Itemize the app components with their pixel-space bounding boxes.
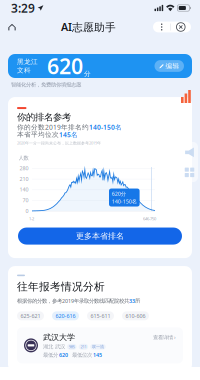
staticText: 625-621 xyxy=(20,312,40,319)
staticText: 文科 xyxy=(17,66,31,74)
staticText: 646-750 xyxy=(143,216,156,221)
button[interactable]: More options xyxy=(153,22,170,32)
button[interactable]: 编辑 xyxy=(154,60,184,72)
staticText: 610-606 xyxy=(125,312,145,319)
button[interactable]: Home xyxy=(0,19,24,34)
staticText: 140 xyxy=(19,186,28,193)
button[interactable]: 615-611 xyxy=(87,311,114,320)
staticText: 0 xyxy=(25,207,28,214)
staticText: 智能化分析，免费助你填报志愿 xyxy=(11,81,81,88)
staticText: 湖北 武汉 xyxy=(43,343,65,350)
button[interactable]: 武汉大学 xyxy=(17,327,183,363)
staticText: 280 xyxy=(19,165,28,172)
staticText: 武汉大学 xyxy=(43,332,75,342)
staticText: 140-150名 xyxy=(112,198,137,205)
staticText: 1-2 xyxy=(29,216,34,221)
button[interactable]: Close xyxy=(171,22,191,32)
staticText: 615-611 xyxy=(90,312,110,319)
staticText: 更多本省排名 xyxy=(76,231,124,241)
staticText: 33 xyxy=(129,297,135,304)
staticText: 编辑 xyxy=(165,62,179,70)
staticText: 70 xyxy=(22,197,28,204)
button[interactable]: 610-606 xyxy=(122,311,149,320)
staticText: 分 xyxy=(84,70,91,78)
button[interactable]: 620-616 xyxy=(52,311,79,320)
button[interactable]: Announcements xyxy=(181,142,198,163)
staticText: 你的排名参考 xyxy=(17,111,71,123)
staticText: 145 xyxy=(93,351,102,358)
staticText: 你的分数2019年排名约 xyxy=(17,123,89,131)
staticText: 145名 xyxy=(59,130,78,139)
staticText: 根据你的分数，参考2019年录取分数线匹配院校共 xyxy=(17,297,129,304)
staticText: 211 xyxy=(80,344,86,349)
staticText: 620 xyxy=(47,52,83,80)
staticText: 双一流 xyxy=(92,344,104,349)
staticText: 所 xyxy=(135,297,140,304)
staticText: 620 xyxy=(59,351,68,358)
staticText: 人数 xyxy=(18,155,28,161)
staticText: 最低分 xyxy=(43,352,58,358)
staticText: 620分 xyxy=(112,190,126,197)
staticText: 黑龙江 xyxy=(17,58,38,66)
staticText: 2020年一分一段尚未公布，以上数据参考2019年 xyxy=(17,140,101,146)
staticText: 最低位次 xyxy=(72,352,92,358)
staticText: 本省平均位次 xyxy=(17,130,59,139)
staticText: 查看详情 › xyxy=(153,334,176,341)
staticText: 140-150名 xyxy=(89,123,122,131)
button[interactable]: Menu xyxy=(181,163,198,182)
staticText: 985 xyxy=(69,344,75,349)
button[interactable]: 更多本省排名 xyxy=(18,228,182,245)
staticText: 3:29 xyxy=(11,0,35,16)
staticText: AI志愿助手 xyxy=(61,20,116,34)
staticText: 往年报考情况分析 xyxy=(17,280,105,293)
button[interactable]: 625-621 xyxy=(17,311,44,320)
staticText: 210 xyxy=(19,175,28,182)
staticText: 620-616 xyxy=(55,312,75,319)
